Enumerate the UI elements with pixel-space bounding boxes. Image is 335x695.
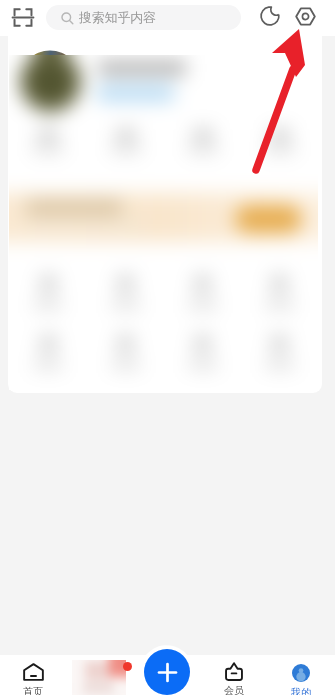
button[interactable]: Scan QR code — [6, 0, 40, 34]
button[interactable]: 会员 — [212, 662, 256, 695]
staticText: 搜索知乎内容 — [79, 10, 156, 26]
button[interactable]: Discover — [72, 660, 126, 695]
button[interactable]: 我的 — [279, 664, 323, 695]
button[interactable]: Settings — [289, 0, 321, 32]
button[interactable]: Create post — [144, 649, 190, 695]
staticText: 首页 — [23, 685, 43, 695]
button[interactable]: Dark mode — [254, 0, 286, 32]
button[interactable]: 首页 — [11, 663, 55, 695]
button[interactable]: 搜索知乎内容 — [46, 5, 241, 30]
staticText: 会员 — [224, 684, 244, 695]
staticText: 我的 — [291, 686, 311, 695]
